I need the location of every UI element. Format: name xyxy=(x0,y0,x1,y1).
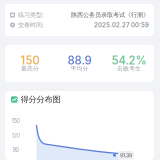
staticText: 交卷时间: xyxy=(18,21,44,29)
staticText: 陕西公务员录取考试《行测》 xyxy=(71,11,149,19)
staticText: 2025.02.27 00:59 xyxy=(94,21,149,29)
staticText: 练习类型: xyxy=(18,11,44,19)
staticText: 平均分 xyxy=(70,65,88,72)
staticText: 得分分布图 xyxy=(20,94,60,105)
staticText: 54.2% xyxy=(112,54,147,67)
staticText: 最高分 xyxy=(21,65,39,72)
staticText: 120 xyxy=(11,132,20,139)
staticText: 91.39 xyxy=(120,152,132,158)
staticText: 击败考生 xyxy=(117,65,141,72)
staticText: 150 xyxy=(11,118,20,124)
staticText: 88.9 xyxy=(67,54,91,67)
staticText: 150 xyxy=(20,54,39,67)
staticText: 90 xyxy=(12,147,19,153)
